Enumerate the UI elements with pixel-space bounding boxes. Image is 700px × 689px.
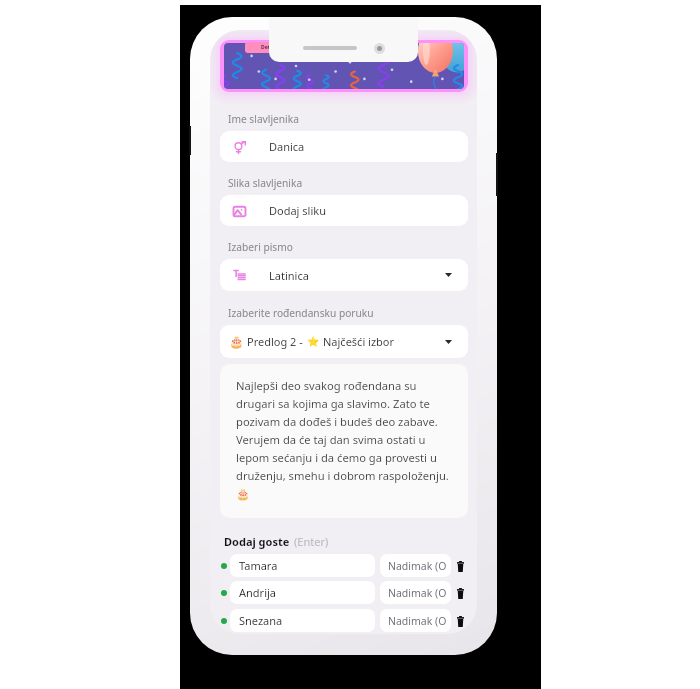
staticText: Latinica [269, 268, 309, 283]
button[interactable]: Dodaj sliku [220, 195, 468, 226]
staticText: ⭐ [307, 336, 320, 348]
staticText: Dodaj sliku [269, 203, 326, 218]
button[interactable]: Andrija [230, 581, 375, 604]
staticText: Izaberi pismo [228, 240, 293, 254]
button[interactable]: Delete guest [454, 560, 466, 572]
staticText: Nadimak (O [388, 614, 447, 628]
staticText: 🎂 [229, 335, 244, 349]
staticText: Izaberite rođendansku poruku [228, 306, 374, 320]
staticText: Detalji [261, 44, 278, 51]
staticText: Andrija [239, 585, 276, 600]
staticText: Slika slavljenika [228, 176, 303, 190]
button[interactable]: Nadimak (O [380, 554, 451, 577]
button[interactable]: Danica [220, 131, 468, 162]
staticText: Nadimak (O [388, 586, 447, 600]
button[interactable]: Nadimak (O [380, 609, 451, 632]
staticText: Predlog 2 - [247, 334, 303, 349]
button[interactable]: Delete guest [454, 587, 466, 599]
staticText: Danica [269, 139, 305, 154]
button[interactable]: Snezana [230, 609, 375, 632]
button[interactable]: Tamara [230, 554, 375, 577]
staticText: Snezana [239, 613, 283, 628]
button[interactable]: Delete guest [454, 615, 466, 627]
staticText: Tamara [239, 558, 278, 573]
button[interactable]: Najlepši deo svakog rođendana su drugari… [220, 364, 468, 518]
staticText: Najlepši deo svakog rođendana su drugari… [236, 378, 458, 501]
button[interactable]: Latinica [220, 259, 468, 291]
staticText: (Enter) [294, 534, 329, 549]
button[interactable]: Nadimak (O [380, 581, 451, 604]
staticText: Ime slavljenika [228, 112, 299, 126]
staticText: Dodaj goste [224, 534, 290, 549]
button[interactable]: 🎂 [220, 325, 468, 358]
staticText: Najčešći izbor [323, 334, 395, 349]
staticText: Nadimak (O [388, 559, 447, 573]
